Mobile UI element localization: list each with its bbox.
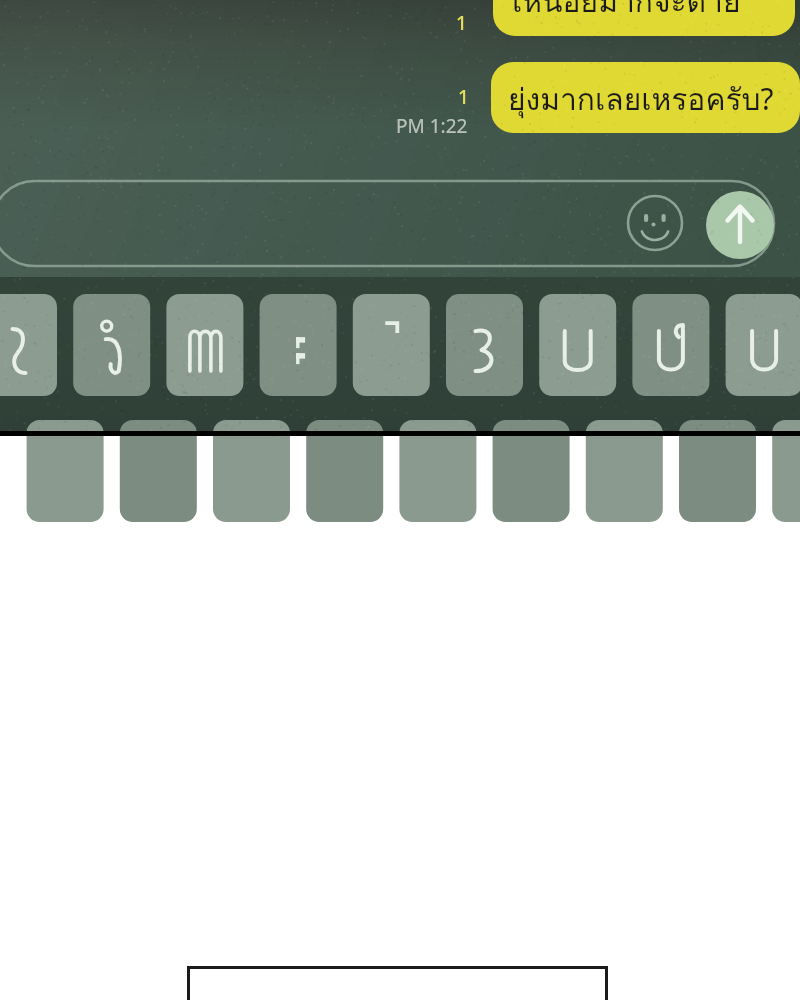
button[interactable]: Emoji [626, 194, 684, 252]
staticText: ยุ่งมากเลยเหรอครับ? [508, 76, 774, 124]
staticText: PM 1:22 [396, 113, 468, 139]
staticText: 1 [456, 10, 467, 36]
staticText: เหนื่อยมากจะตาย [512, 0, 741, 26]
button[interactable]: Message input field [0, 181, 620, 267]
staticText: 1 [458, 84, 469, 110]
button[interactable]: Send message [704, 190, 776, 262]
